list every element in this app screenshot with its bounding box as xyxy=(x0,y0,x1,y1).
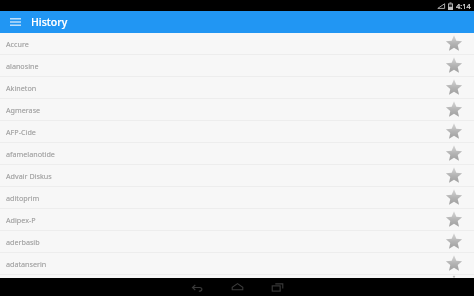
button[interactable]: Open navigation drawer xyxy=(0,11,31,33)
staticText: AFP-Cide xyxy=(6,127,434,137)
button[interactable]: afamelanotide xyxy=(0,143,474,164)
staticText: adatanserin xyxy=(6,259,434,269)
staticText: 4:14 xyxy=(456,1,471,11)
staticText: aditoprim xyxy=(6,193,434,203)
button[interactable]: Akineton xyxy=(0,77,474,98)
button[interactable]: Recent apps xyxy=(257,278,297,296)
button[interactable]: Adipex-P xyxy=(0,209,474,230)
button[interactable]: AFP-Cide xyxy=(0,121,474,142)
button[interactable]: Toggle favourite for alanosine xyxy=(434,55,474,76)
button[interactable]: Toggle favourite for Agmerase xyxy=(434,99,474,120)
button[interactable]: Toggle favourite for adatanserin xyxy=(434,253,474,274)
button[interactable]: Home xyxy=(217,278,257,296)
button[interactable]: Toggle favourite for Akineton xyxy=(434,77,474,98)
button[interactable]: Back xyxy=(177,278,217,296)
button[interactable]: Toggle favourite for adapalene xyxy=(434,275,474,278)
button[interactable]: Toggle favourite for afamelanotide xyxy=(434,143,474,164)
staticText: Akineton xyxy=(6,83,434,93)
button[interactable]: Toggle favourite for aderbasib xyxy=(434,231,474,252)
staticText: afamelanotide xyxy=(6,149,434,159)
staticText: Accure xyxy=(6,39,434,49)
staticText: aderbasib xyxy=(6,237,434,247)
staticText: History xyxy=(31,15,68,29)
button[interactable]: Toggle favourite for Accure xyxy=(434,33,474,54)
button[interactable]: adatanserin xyxy=(0,253,474,274)
button[interactable]: aditoprim xyxy=(0,187,474,208)
staticText: alanosine xyxy=(6,61,434,71)
button[interactable]: Toggle favourite for aditoprim xyxy=(434,187,474,208)
button[interactable]: Toggle favourite for Adipex-P xyxy=(434,209,474,230)
button[interactable]: Accure xyxy=(0,33,474,54)
button[interactable]: Advair Diskus xyxy=(0,165,474,186)
staticText: Adipex-P xyxy=(6,215,434,225)
staticText: Advair Diskus xyxy=(6,171,434,181)
staticText: Agmerase xyxy=(6,105,434,115)
button[interactable]: aderbasib xyxy=(0,231,474,252)
button[interactable]: Toggle favourite for AFP-Cide xyxy=(434,121,474,142)
button[interactable]: alanosine xyxy=(0,55,474,76)
button[interactable]: Toggle favourite for Advair Diskus xyxy=(434,165,474,186)
button[interactable]: Agmerase xyxy=(0,99,474,120)
